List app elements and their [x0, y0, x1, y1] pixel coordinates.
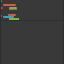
button[interactable]: Header	[3, 4, 16, 6]
button[interactable]	[0, 7, 64, 9]
button[interactable]	[0, 16, 64, 18]
button[interactable]	[0, 14, 64, 16]
button[interactable]	[0, 18, 64, 20]
